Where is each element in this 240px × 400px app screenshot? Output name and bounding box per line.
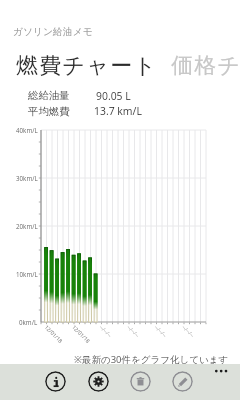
staticText: 20km/L [16,222,38,230]
staticText: 総給油量 [28,89,70,102]
button[interactable]: Settings [88,371,109,392]
staticText: ※最新の30件をグラフ化しています [74,353,229,366]
staticText: ガソリン給油メモ [13,26,93,38]
button[interactable]: Edit [172,371,193,392]
staticText: 30km/L [16,174,38,182]
staticText: 90.05 L [96,89,131,103]
button[interactable]: Info [45,371,66,392]
staticText: 平均燃費 [28,105,70,118]
staticText: 10km/L [16,270,38,278]
button[interactable]: More options [210,364,236,380]
staticText: 40km/L [16,126,38,134]
staticText: 0km/L [19,318,38,326]
button[interactable]: Delete [130,371,151,392]
staticText: 13.7 km/L [94,104,142,118]
button[interactable]: 燃費チャート [16,52,158,80]
button[interactable]: 価格チ [171,52,240,80]
